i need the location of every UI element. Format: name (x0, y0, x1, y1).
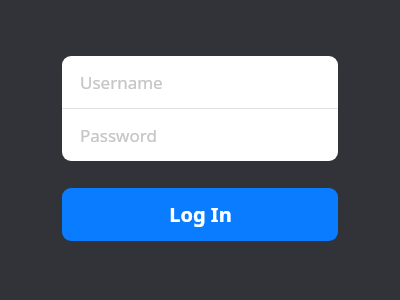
staticText: Password (80, 124, 157, 147)
button[interactable]: Log In (62, 188, 338, 241)
staticText: Log In (169, 201, 232, 228)
button[interactable]: Password (62, 109, 338, 161)
button[interactable]: Username (62, 56, 338, 108)
staticText: Username (80, 71, 163, 94)
